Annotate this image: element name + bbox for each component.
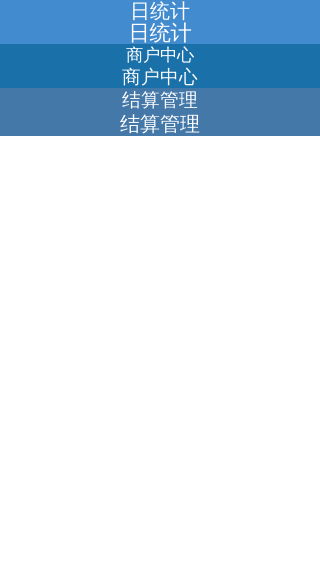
staticText: 结算管理 xyxy=(120,112,200,136)
staticText: 商户中心 xyxy=(122,65,198,88)
staticText: 日统计 xyxy=(128,20,191,46)
staticText: 日统计 xyxy=(130,0,190,23)
staticText: 商户中心 xyxy=(126,44,194,66)
staticText: 结算管理 xyxy=(122,88,198,111)
